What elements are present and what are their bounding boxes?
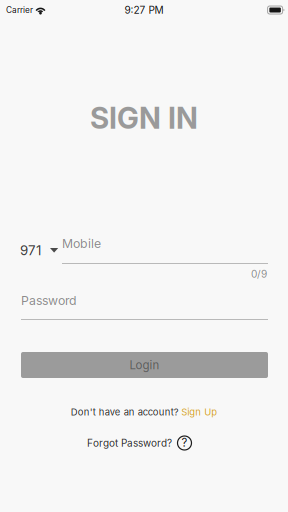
- button[interactable]: Don't have an account?: [0, 404, 288, 420]
- button[interactable]: Forgot Password?: [87, 434, 197, 452]
- staticText: Mobile: [62, 236, 101, 251]
- staticText: SIGN IN: [90, 100, 198, 136]
- staticText: Sign Up: [181, 406, 217, 418]
- button[interactable]: 971: [20, 236, 64, 266]
- staticText: Carrier: [6, 5, 33, 15]
- staticText: 971: [20, 242, 41, 258]
- staticText: Forgot Password?: [87, 437, 172, 449]
- staticText: Don't have an account?: [71, 406, 179, 418]
- staticText: 0/9: [251, 268, 267, 280]
- button[interactable]: Login: [21, 352, 268, 378]
- staticText: Password: [21, 293, 77, 308]
- staticText: Login: [129, 358, 159, 372]
- staticText: 9:27 PM: [124, 4, 163, 16]
- staticText: ?: [181, 436, 187, 449]
